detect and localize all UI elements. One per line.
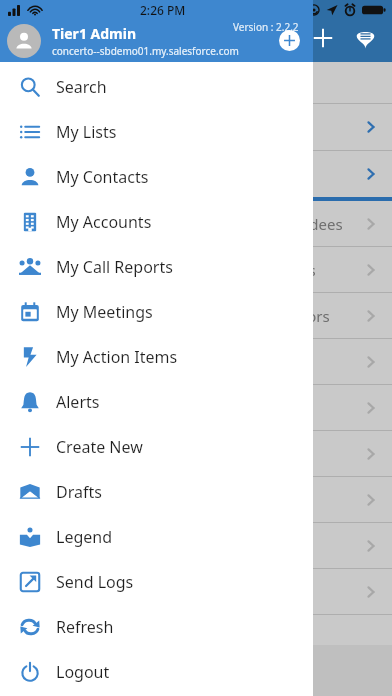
button[interactable]: [0, 477, 392, 522]
button[interactable]: Add: [302, 17, 344, 59]
button[interactable]: es: [0, 247, 392, 292]
button[interactable]: My Call Reports: [0, 244, 313, 289]
button[interactable]: Refresh: [0, 604, 313, 649]
button[interactable]: [0, 385, 392, 430]
staticText: sors: [300, 306, 330, 326]
staticText: My Accounts: [56, 211, 152, 233]
button[interactable]: [0, 104, 392, 150]
staticText: My Contacts: [56, 166, 149, 188]
button[interactable]: [0, 151, 392, 197]
staticText: Send Logs: [56, 571, 134, 593]
button[interactable]: Search: [0, 64, 313, 109]
button[interactable]: Send Logs: [0, 559, 313, 604]
button[interactable]: [0, 339, 392, 384]
button[interactable]: My Contacts: [0, 154, 313, 199]
staticText: 2:26 PM: [140, 2, 186, 18]
button[interactable]: Legend: [0, 514, 313, 559]
button[interactable]: Tier1 Admin: [0, 20, 313, 62]
staticText: es: [300, 260, 316, 280]
staticText: Create New: [56, 436, 143, 458]
staticText: My Meetings: [56, 301, 153, 323]
staticText: Legend: [56, 526, 113, 548]
staticText: My Action Items: [56, 346, 178, 368]
button[interactable]: My Lists: [0, 109, 313, 154]
button[interactable]: Filter: [344, 17, 386, 59]
button[interactable]: Logout: [0, 649, 313, 694]
staticText: Drafts: [56, 481, 102, 503]
staticText: My Call Reports: [56, 256, 173, 278]
staticText: Refresh: [56, 616, 114, 638]
button[interactable]: My Meetings: [0, 289, 313, 334]
button[interactable]: Create New: [0, 645, 392, 696]
button[interactable]: Create New: [0, 424, 313, 469]
button[interactable]: My Accounts: [0, 199, 313, 244]
button[interactable]: My Action Items: [0, 334, 313, 379]
button[interactable]: [0, 431, 392, 476]
staticText: Logout: [56, 661, 110, 683]
button[interactable]: [0, 523, 392, 568]
button[interactable]: [0, 569, 392, 614]
button[interactable]: ndees: [0, 201, 392, 246]
button[interactable]: [0, 62, 392, 103]
button[interactable]: sors: [0, 293, 392, 338]
staticText: Alerts: [56, 391, 100, 413]
staticText: concerto--sbdemo01.my.salesforce.com: [52, 44, 239, 58]
staticText: ndees: [300, 214, 343, 234]
staticText: Tier1 Admin: [52, 24, 136, 43]
button[interactable]: Add account: [271, 22, 307, 58]
staticText: Search: [56, 76, 107, 98]
button[interactable]: Drafts: [0, 469, 313, 514]
button[interactable]: Alerts: [0, 379, 313, 424]
staticText: My Lists: [56, 121, 117, 143]
staticText: Version : 2.2.2: [233, 20, 299, 34]
